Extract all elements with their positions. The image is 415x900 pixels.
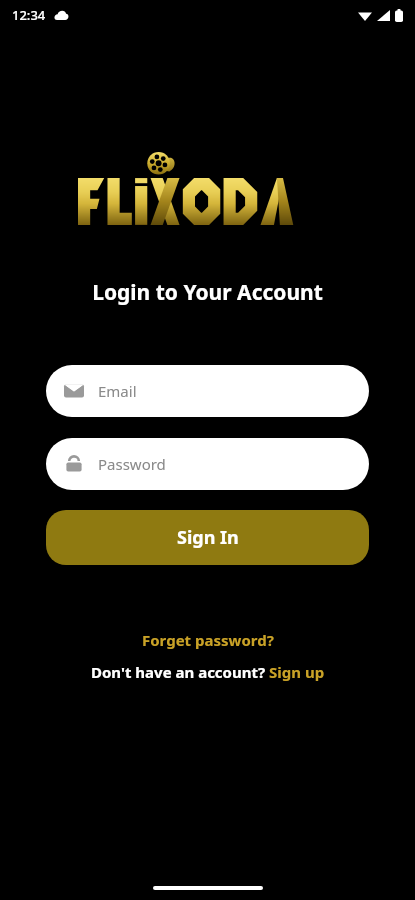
staticText: Password (98, 454, 166, 474)
button[interactable]: Sign In (46, 510, 369, 565)
staticText: Login to Your Account (92, 278, 323, 307)
staticText: Forget password? (142, 630, 274, 650)
button[interactable]: Forget password? (134, 627, 282, 653)
other: Email (64, 381, 84, 401)
other: Password (64, 454, 84, 474)
button[interactable]: Password (46, 438, 369, 490)
button[interactable]: Email (46, 365, 369, 417)
staticText: Email (98, 381, 137, 401)
staticText: Sign In (177, 525, 239, 550)
button[interactable]: Don't have an account? Sign up (83, 659, 333, 685)
staticText: Don't have an account? Sign up (91, 662, 325, 682)
staticText: 12:34 (12, 6, 46, 24)
